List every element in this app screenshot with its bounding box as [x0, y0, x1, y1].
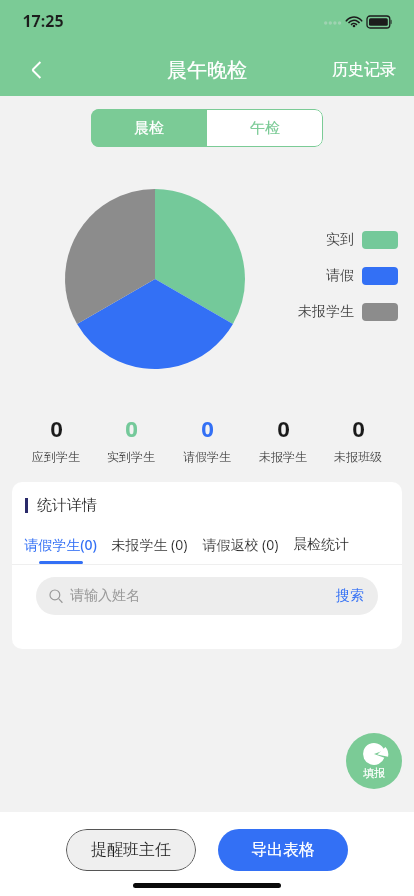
- staticText: 统计详情: [37, 496, 97, 515]
- button[interactable]: 请假学生(0): [24, 535, 97, 564]
- staticText: 未报学生: [259, 449, 307, 464]
- button[interactable]: 晨检统计: [293, 536, 349, 564]
- button[interactable]: 返回: [18, 50, 58, 90]
- staticText: 晨午晚检: [167, 58, 247, 83]
- staticText: 0: [50, 413, 63, 443]
- staticText: 搜索: [336, 587, 364, 605]
- staticText: 未报学生 (0): [111, 535, 188, 554]
- staticText: 17:25: [22, 10, 64, 32]
- staticText: 应到学生: [32, 449, 80, 464]
- staticText: 0: [125, 413, 138, 443]
- button[interactable]: 导出表格: [218, 829, 348, 871]
- staticText: 未报班级: [334, 449, 382, 464]
- button[interactable]: 提醒班主任: [66, 829, 196, 871]
- staticText: 晨检: [134, 119, 164, 138]
- button[interactable]: 午检: [207, 109, 323, 147]
- button[interactable]: 晨检: [91, 109, 207, 147]
- staticText: 请假返校 (0): [202, 535, 279, 554]
- button[interactable]: 请假返校 (0): [202, 535, 279, 564]
- staticText: 实到: [326, 231, 354, 249]
- button[interactable]: 请输入姓名: [36, 577, 378, 615]
- staticText: 午检: [250, 119, 280, 138]
- staticText: 0: [352, 413, 365, 443]
- button[interactable]: 未报学生 (0): [111, 535, 188, 564]
- staticText: 晨检统计: [293, 536, 349, 554]
- staticText: 请假: [326, 267, 354, 285]
- staticText: 历史记录: [332, 60, 396, 80]
- staticText: 请假学生(0): [24, 535, 97, 554]
- button[interactable]: 填报: [346, 733, 402, 789]
- staticText: 提醒班主任: [91, 840, 171, 860]
- staticText: 未报学生: [298, 303, 354, 321]
- staticText: 导出表格: [251, 840, 315, 860]
- staticText: 0: [201, 413, 214, 443]
- staticText: 请假学生: [183, 449, 231, 464]
- staticText: 请输入姓名: [70, 587, 140, 605]
- staticText: 0: [277, 413, 290, 443]
- staticText: 填报: [363, 766, 385, 780]
- staticText: 实到学生: [107, 449, 155, 464]
- button[interactable]: 历史记录: [328, 54, 400, 86]
